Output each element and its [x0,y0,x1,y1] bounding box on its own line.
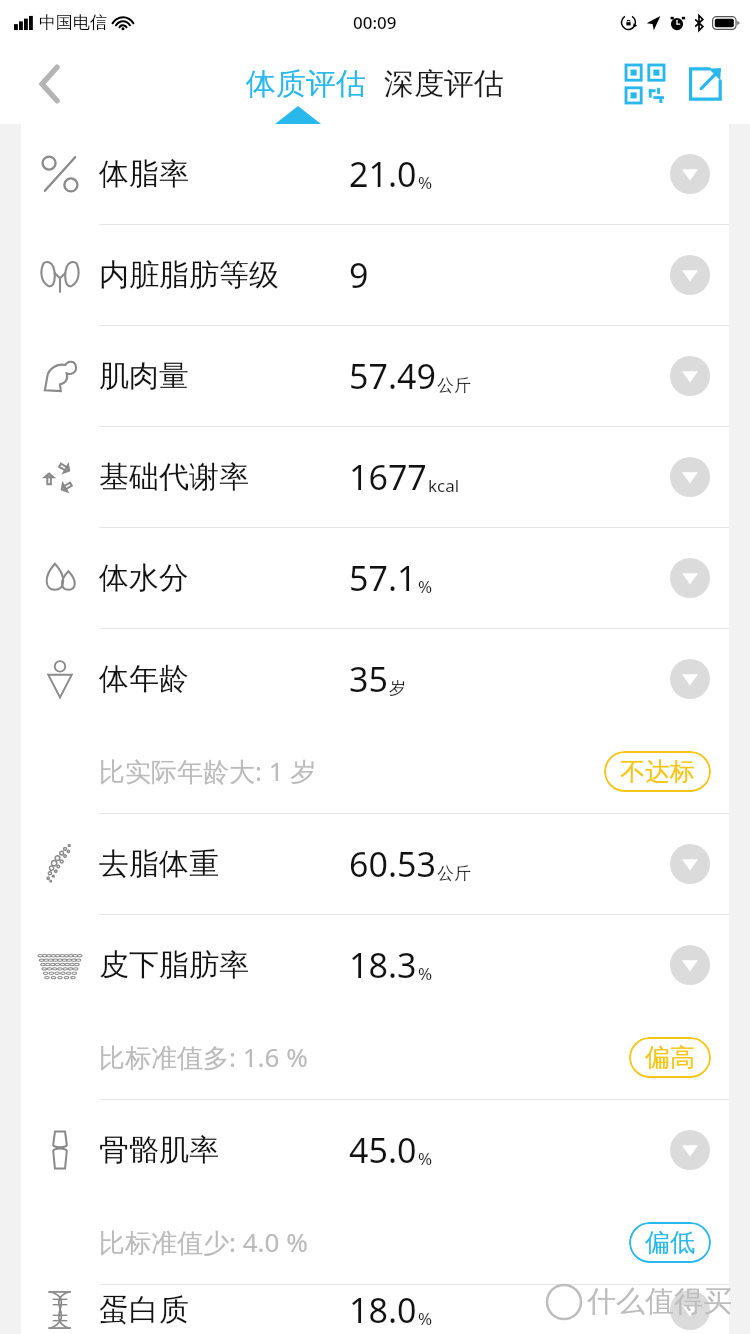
button[interactable]: 体年龄 [21,629,729,814]
staticText: 比标准值多: 1.6 % [99,1039,308,1075]
staticText: 57.1 [349,555,417,601]
staticText: % [418,171,433,194]
button[interactable]: 肌肉量 [21,326,729,427]
staticText: 岁 [389,678,406,699]
staticText: 体水分 [99,559,189,597]
staticText: 去脂体重 [99,845,219,883]
staticText: 基础代谢率 [99,458,249,496]
staticText: 18.3 [349,942,417,988]
button[interactable]: 蛋白质 [21,1285,729,1334]
staticText: 不达标 [620,756,695,787]
staticText: 肌肉量 [99,357,189,395]
button[interactable]: 体质评估 [244,65,368,103]
staticText: 偏高 [645,1042,695,1073]
button[interactable]: 不达标 [620,756,695,787]
button[interactable]: 偏低 [645,1227,695,1258]
staticText: 深度评估 [384,65,504,103]
staticText: 皮下脂肪率 [99,946,249,984]
button[interactable]: Share [682,61,728,107]
button[interactable]: 骨骼肌率 [21,1100,729,1285]
staticText: 比标准值少: 4.0 % [99,1224,308,1260]
staticText: 1677 [349,454,427,500]
button[interactable]: Expand 体脂率 [669,153,711,195]
staticText: 9 [349,252,369,298]
staticText: 中国电信 [39,12,107,33]
button[interactable]: Expand 肌肉量 [669,355,711,397]
staticText: kcal [428,474,460,497]
button[interactable]: Expand 皮下脂肪率 [669,944,711,986]
button[interactable]: Expand 蛋白质 [669,1289,711,1331]
staticText: 体年龄 [99,660,189,698]
button[interactable]: 偏高 [645,1042,695,1073]
staticText: % [418,1147,433,1170]
button[interactable]: 去脂体重 [21,814,729,915]
button[interactable]: Expand 内脏脂肪等级 [669,254,711,296]
staticText: 什么值得买 [587,1283,732,1320]
staticText: % [418,962,433,985]
staticText: 蛋白质 [99,1291,189,1329]
staticText: 57.49 [349,353,436,399]
button[interactable]: 深度评估 [382,65,506,103]
staticText: 体脂率 [99,155,189,193]
button[interactable]: Expand 去脂体重 [669,843,711,885]
staticText: 18.0 [349,1287,417,1333]
staticText: 比实际年龄大: 1 岁 [99,753,317,789]
button[interactable]: Expand 骨骼肌率 [669,1129,711,1171]
staticText: 偏低 [645,1227,695,1258]
button[interactable]: Expand 体年龄 [669,658,711,700]
staticText: 公斤 [437,375,471,396]
staticText: 内脏脂肪等级 [99,256,279,294]
button[interactable]: 体脂率 [21,124,729,225]
button[interactable]: 基础代谢率 [21,427,729,528]
button[interactable]: 内脏脂肪等级 [21,225,729,326]
button[interactable]: Expand 基础代谢率 [669,456,711,498]
staticText: % [418,1307,433,1330]
staticText: 00:09 [353,11,397,34]
staticText: 60.53 [349,841,436,887]
button[interactable]: 皮下脂肪率 [21,915,729,1100]
staticText: 21.0 [349,151,417,197]
button[interactable]: 体水分 [21,528,729,629]
button[interactable]: Back [26,60,74,108]
staticText: % [418,575,433,598]
staticText: 公斤 [437,863,471,884]
staticText: 体质评估 [246,65,366,103]
button[interactable]: Expand 体水分 [669,557,711,599]
staticText: 骨骼肌率 [99,1131,219,1169]
button[interactable]: QR code [622,61,668,107]
staticText: 45.0 [349,1127,417,1173]
staticText: 35 [349,656,388,702]
